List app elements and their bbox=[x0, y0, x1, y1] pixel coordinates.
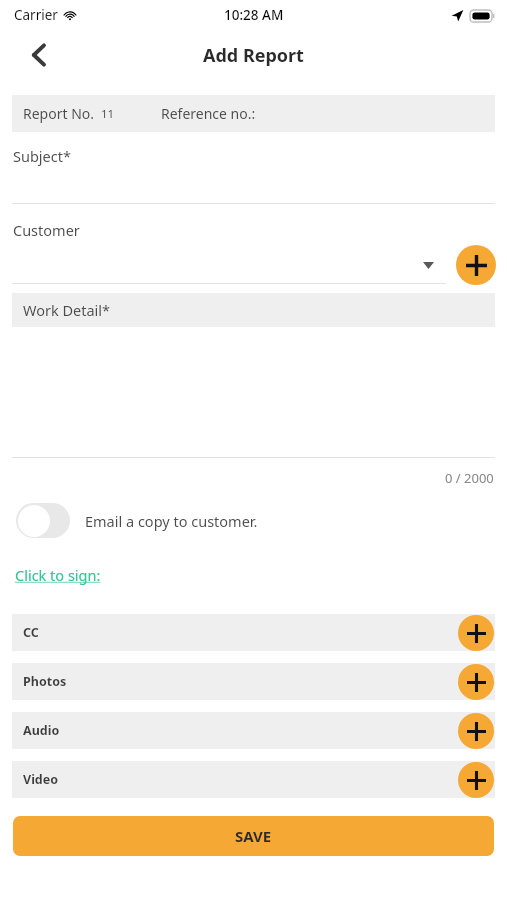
staticText: Subject* bbox=[13, 146, 71, 166]
button[interactable]: Video bbox=[12, 761, 495, 798]
button[interactable]: Add Audio bbox=[458, 713, 494, 749]
staticText: CC bbox=[23, 624, 39, 641]
staticText: Email a copy to customer. bbox=[85, 511, 258, 531]
staticText: 0 / 2000 bbox=[445, 469, 494, 487]
staticText: Video bbox=[23, 771, 59, 788]
button[interactable]: Back bbox=[18, 35, 58, 75]
staticText: Work Detail* bbox=[23, 300, 111, 320]
staticText: Click to sign: bbox=[15, 565, 101, 585]
staticText: Add Report bbox=[203, 43, 304, 68]
staticText: Audio bbox=[23, 722, 60, 739]
button[interactable]: CC bbox=[12, 614, 495, 651]
staticText: Customer bbox=[13, 220, 80, 240]
button[interactable]: Work Detail* bbox=[12, 293, 495, 327]
button[interactable]: SAVE bbox=[13, 816, 494, 856]
button[interactable]: Audio bbox=[12, 712, 495, 749]
staticText: 10:28 AM bbox=[224, 6, 284, 24]
staticText: Report No. bbox=[23, 104, 95, 123]
button[interactable]: Select customer bbox=[12, 244, 446, 284]
staticText: Carrier bbox=[14, 6, 58, 24]
button[interactable]: Add Photos bbox=[458, 664, 494, 700]
button[interactable]: Click to sign: bbox=[15, 565, 101, 585]
staticText: Photos bbox=[23, 673, 67, 690]
button[interactable]: Photos bbox=[12, 663, 495, 700]
staticText: SAVE bbox=[235, 826, 272, 846]
button[interactable]: Add CC bbox=[458, 615, 494, 651]
button[interactable]: Add customer bbox=[456, 245, 496, 285]
staticText: 11 bbox=[101, 106, 115, 122]
button[interactable]: Report No. bbox=[12, 95, 495, 132]
button[interactable]: Email a copy to customer. bbox=[16, 503, 258, 538]
staticText: Reference no.: bbox=[161, 104, 256, 123]
button[interactable]: Add Video bbox=[458, 762, 494, 798]
